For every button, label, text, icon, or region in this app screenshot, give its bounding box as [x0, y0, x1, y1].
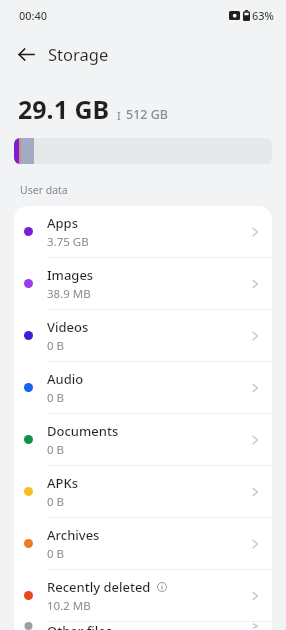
- staticText: Audio: [47, 370, 84, 388]
- staticText: 0 B: [47, 546, 65, 562]
- button[interactable]: Back: [8, 36, 44, 72]
- staticText: 0 B: [47, 338, 65, 354]
- button[interactable]: Images: [14, 258, 272, 309]
- button[interactable]: APKs: [14, 466, 272, 517]
- staticText: 0 B: [47, 390, 65, 406]
- staticText: Archives: [47, 526, 100, 544]
- button[interactable]: Apps: [14, 206, 272, 257]
- other: More information: [157, 582, 167, 592]
- staticText: 00:40: [19, 8, 48, 23]
- staticText: 512 GB: [126, 106, 168, 123]
- staticText: 38.9 MB: [47, 286, 91, 302]
- staticText: Recently deleted: [47, 578, 151, 596]
- staticText: 29.1 GB: [18, 92, 110, 126]
- staticText: User data: [20, 183, 68, 197]
- button[interactable]: Documents: [14, 414, 272, 465]
- staticText: Storage: [48, 43, 109, 65]
- staticText: Apps: [47, 214, 78, 232]
- staticText: 3.75 GB: [47, 234, 89, 250]
- staticText: I: [117, 108, 121, 123]
- button[interactable]: Recently deleted: [14, 570, 272, 621]
- button[interactable]: Archives: [14, 518, 272, 569]
- staticText: 63%: [252, 8, 274, 23]
- staticText: Documents: [47, 422, 119, 440]
- staticText: 10.2 MB: [47, 598, 91, 614]
- staticText: 0 B: [47, 494, 65, 510]
- button[interactable]: Audio: [14, 362, 272, 413]
- button[interactable]: Videos: [14, 310, 272, 361]
- staticText: 0 B: [47, 442, 65, 458]
- staticText: APKs: [47, 474, 78, 492]
- button[interactable]: Other files: [14, 622, 272, 630]
- staticText: Videos: [47, 318, 89, 336]
- staticText: Images: [47, 266, 94, 284]
- staticText: Other files: [47, 622, 113, 630]
